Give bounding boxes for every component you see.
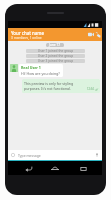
staticText: User 2 joined the group [28, 54, 83, 58]
button[interactable]: Recent apps [75, 161, 91, 175]
staticText: 3 members, 1 online [11, 36, 42, 40]
staticText: Hi! How are you doing? [21, 71, 60, 76]
button[interactable]: Home [47, 161, 63, 175]
staticText: 12:34 [87, 87, 94, 91]
button[interactable]: Video call [87, 29, 94, 40]
staticText: Real User 1 [21, 65, 41, 70]
button[interactable]: Record voice message [94, 152, 100, 158]
staticText: Your chat name [11, 30, 44, 36]
staticText: This preview is only for styling [24, 81, 74, 86]
button[interactable]: Back [20, 161, 36, 175]
staticText: User 3 joined the group [28, 59, 83, 63]
button[interactable]: Emoji [10, 152, 16, 158]
staticText: User 1 joined the group [28, 49, 83, 53]
staticText: June 17 [49, 43, 61, 47]
staticText: Type message [18, 153, 41, 158]
staticText: purposes. It's not functional. [24, 86, 71, 91]
button[interactable]: Call [94, 29, 101, 40]
